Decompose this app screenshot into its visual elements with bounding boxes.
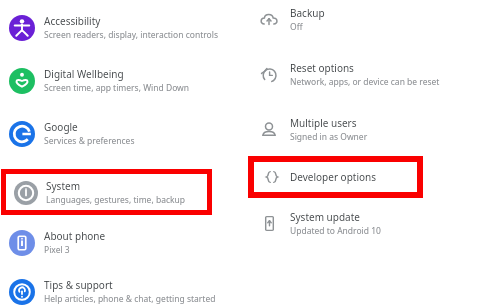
button[interactable]: Google (0, 120, 245, 147)
staticText: System update (290, 210, 360, 224)
staticText: Network, apps, or device can be reset (290, 76, 440, 88)
staticText: Help articles, phone & chat, getting sta… (44, 293, 216, 305)
staticText: Off (290, 21, 303, 33)
other: Backup (259, 10, 279, 30)
other: System update (260, 214, 279, 233)
staticText: Developer options (290, 170, 377, 184)
other: Accessibility (9, 15, 35, 41)
staticText: Screen readers, display, interaction con… (44, 29, 218, 41)
staticText: Updated to Android 10 (290, 225, 381, 237)
staticText: Multiple users (290, 116, 357, 130)
button[interactable]: Tips and support (0, 278, 245, 305)
staticText: Accessibility (44, 14, 101, 28)
staticText: Screen time, app timers, Wind Down (44, 82, 190, 94)
staticText: Pixel 3 (44, 244, 70, 256)
staticText: Signed in as Owner (290, 131, 368, 143)
staticText: Tips & support (44, 278, 113, 292)
button[interactable]: Reset options (248, 61, 502, 88)
staticText: About phone (44, 229, 106, 243)
button[interactable]: Accessibility (0, 14, 245, 41)
button[interactable]: System update (248, 210, 502, 237)
button[interactable]: Developer options (254, 162, 417, 192)
button[interactable]: Multiple users (248, 116, 502, 143)
staticText: Services & preferences (44, 135, 135, 147)
other: About phone (9, 230, 35, 256)
staticText: Digital Wellbeing (44, 67, 124, 81)
other: Reset options (259, 65, 279, 85)
other: Google (9, 121, 35, 147)
other: Tips and support (9, 279, 35, 305)
staticText: Reset options (290, 61, 354, 75)
staticText: System (46, 179, 80, 193)
other: Developer options (263, 168, 281, 186)
other: Multiple users (259, 120, 279, 140)
other: Digital Wellbeing (9, 68, 35, 94)
button[interactable]: Digital Wellbeing (0, 67, 245, 94)
other: System (14, 181, 38, 205)
staticText: Backup (290, 6, 325, 20)
button[interactable]: System (6, 179, 207, 206)
button[interactable]: Backup (248, 6, 502, 33)
staticText: Languages, gestures, time, backup (46, 194, 186, 206)
button[interactable]: About phone (0, 229, 245, 256)
staticText: Google (44, 120, 78, 134)
